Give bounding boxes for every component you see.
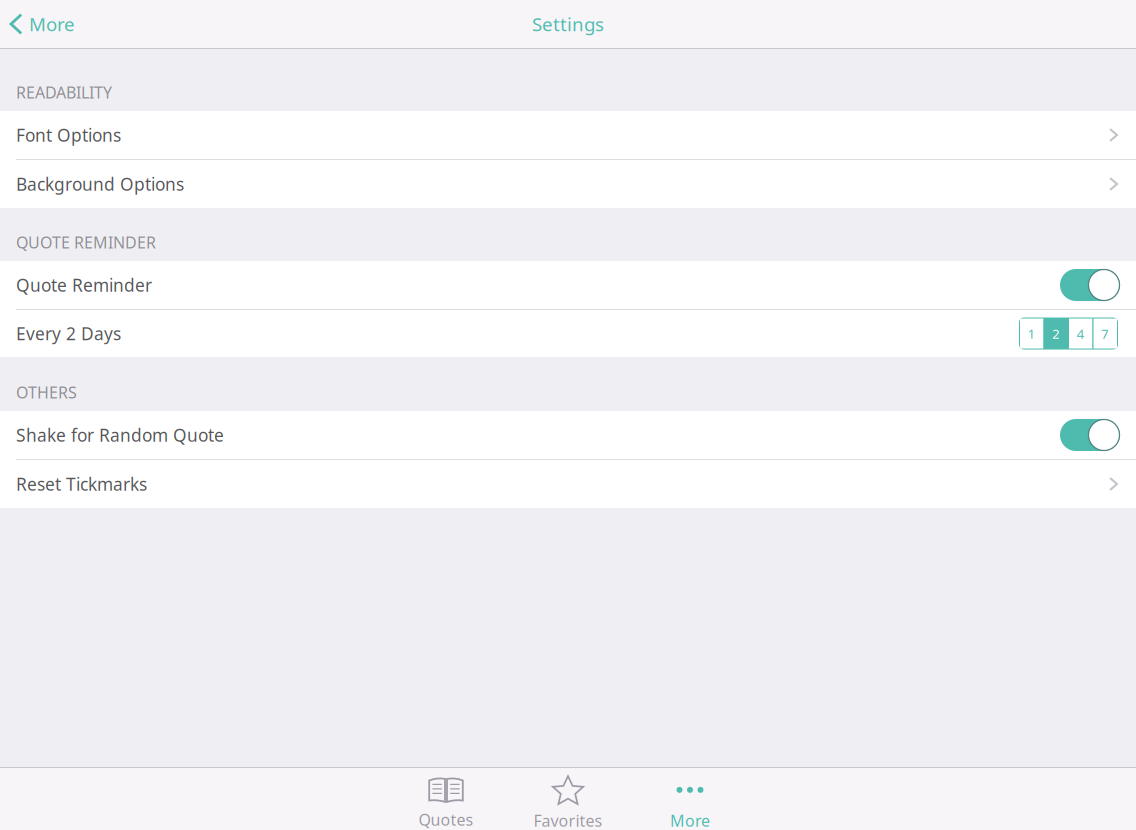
staticText: QUOTE REMINDER	[16, 232, 156, 253]
staticText: READABILITY	[16, 82, 112, 103]
button[interactable]: Quotes	[385, 768, 507, 830]
button[interactable]: Favorites	[507, 768, 629, 830]
staticText: More	[29, 12, 75, 36]
button[interactable]: More	[629, 768, 751, 830]
staticText: Every 2 Days	[16, 322, 121, 345]
button[interactable]: Every 7 days	[1093, 318, 1117, 348]
staticText: Shake for Random Quote	[16, 423, 224, 446]
staticText: OTHERS	[16, 382, 77, 403]
staticText: Settings	[532, 12, 604, 36]
staticText: Quotes	[418, 809, 473, 830]
button[interactable]: Font Options	[0, 111, 1136, 159]
button[interactable]: Quote Reminder	[1060, 269, 1120, 301]
staticText: 2	[1052, 325, 1060, 342]
staticText: Favorites	[533, 810, 602, 830]
button[interactable]: Every 1 days	[1020, 318, 1043, 348]
button[interactable]: Every 4 days	[1069, 318, 1092, 348]
staticText: Reset Tickmarks	[16, 472, 147, 495]
button[interactable]: Back to More	[0, 2, 75, 46]
button[interactable]: Reset Tickmarks	[0, 460, 1136, 508]
button[interactable]: Background Options	[0, 160, 1136, 208]
staticText: More	[670, 810, 710, 830]
staticText: Background Options	[16, 172, 184, 195]
staticText: Font Options	[16, 123, 121, 146]
button[interactable]: Shake for Random Quote	[1060, 419, 1120, 451]
button[interactable]: Every 2 days	[1044, 318, 1068, 348]
staticText: 4	[1077, 325, 1085, 342]
staticText: 7	[1101, 325, 1109, 342]
staticText: 1	[1028, 325, 1036, 342]
staticText: Quote Reminder	[16, 273, 152, 296]
